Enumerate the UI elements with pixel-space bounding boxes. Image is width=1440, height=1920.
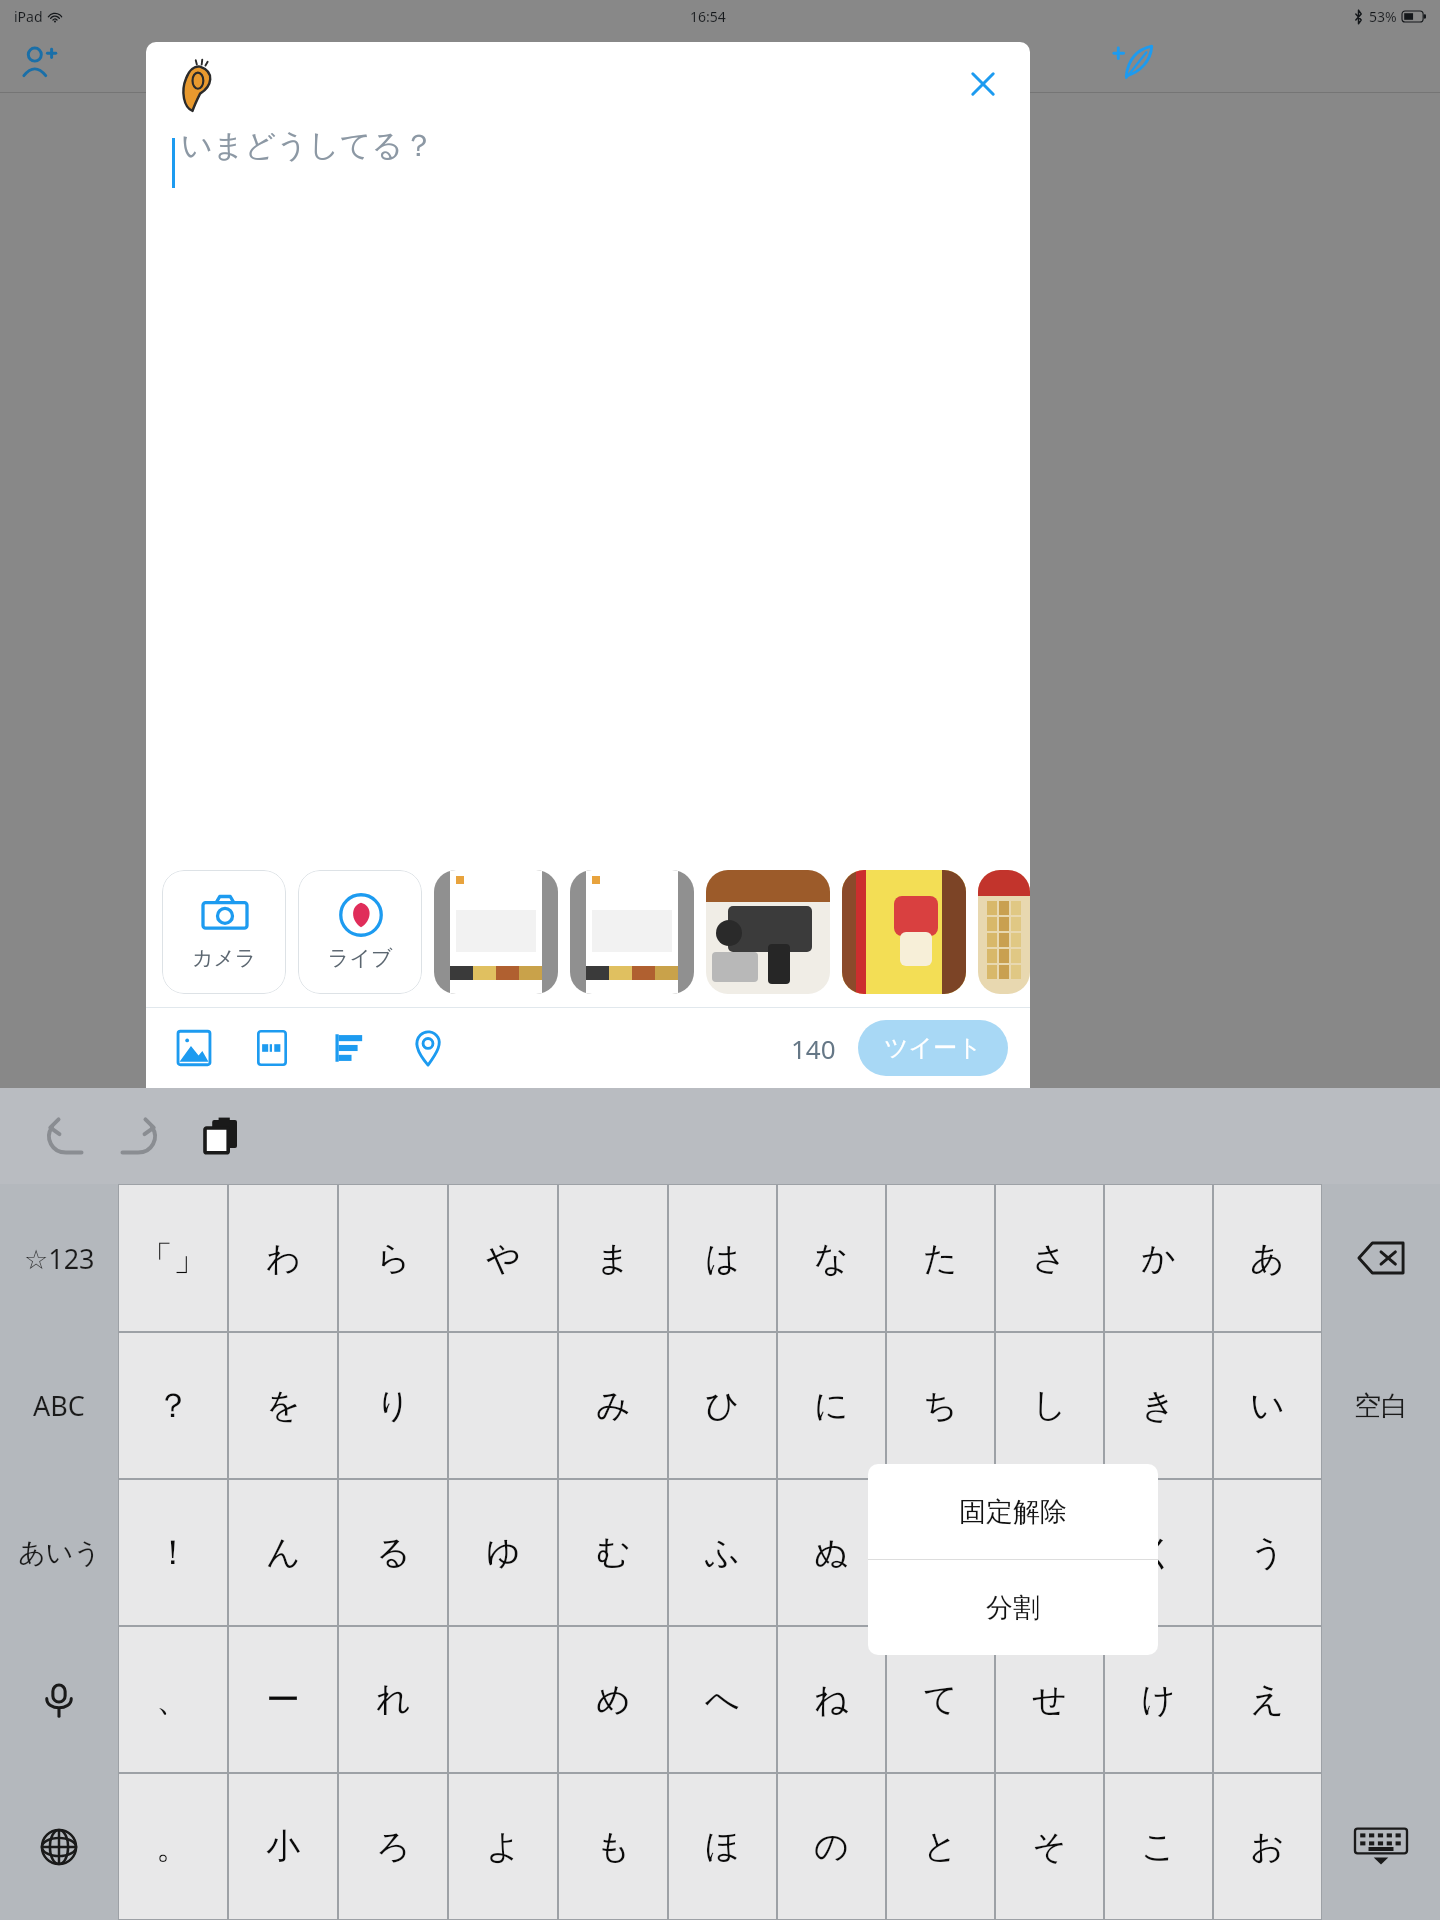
staticText: ！: [156, 1531, 190, 1574]
button[interactable]: あいう: [0, 1479, 118, 1626]
button[interactable]: さ: [995, 1184, 1104, 1332]
staticText: を: [266, 1384, 301, 1427]
button[interactable]: ま: [558, 1184, 668, 1332]
button[interactable]: ね: [777, 1626, 886, 1773]
button[interactable]: [448, 1332, 558, 1479]
button[interactable]: ABC: [0, 1332, 118, 1479]
staticText: に: [814, 1384, 849, 1427]
button[interactable]: Switch keyboard: [0, 1773, 118, 1920]
staticText: ね: [814, 1678, 849, 1721]
button[interactable]: こ: [1104, 1773, 1213, 1920]
button[interactable]: う: [1213, 1479, 1322, 1626]
button[interactable]: 「」: [118, 1184, 228, 1332]
button[interactable]: も: [558, 1773, 668, 1920]
button[interactable]: ふ: [668, 1479, 777, 1626]
button[interactable]: 、: [118, 1626, 228, 1773]
button[interactable]: り: [338, 1332, 448, 1479]
button[interactable]: [706, 870, 830, 994]
staticText: ？: [156, 1384, 190, 1427]
button[interactable]: よ: [448, 1773, 558, 1920]
button[interactable]: な: [777, 1184, 886, 1332]
button[interactable]: い: [1213, 1332, 1322, 1479]
staticText: り: [376, 1384, 411, 1427]
button[interactable]: [570, 870, 694, 994]
button[interactable]: す: [995, 1479, 1104, 1626]
button[interactable]: Add poll: [324, 1022, 376, 1074]
button[interactable]: 固定解除: [868, 1464, 1158, 1559]
staticText: く: [1141, 1531, 1176, 1574]
button[interactable]: お: [1213, 1773, 1322, 1920]
staticText: 。: [156, 1825, 190, 1868]
button[interactable]: ☆123: [0, 1184, 118, 1332]
staticText: れ: [376, 1678, 411, 1721]
button[interactable]: つ: [886, 1479, 995, 1626]
button[interactable]: Undo: [30, 1101, 100, 1171]
staticText: 分割: [986, 1591, 1040, 1625]
button[interactable]: Delete: [1322, 1184, 1440, 1332]
button[interactable]: 空白: [1322, 1332, 1440, 1479]
button[interactable]: ？: [118, 1332, 228, 1479]
staticText: つ: [923, 1531, 958, 1574]
button[interactable]: ひ: [668, 1332, 777, 1479]
button[interactable]: ゆ: [448, 1479, 558, 1626]
button[interactable]: [842, 870, 966, 994]
button[interactable]: そ: [995, 1773, 1104, 1920]
button[interactable]: Add photo: [168, 1022, 220, 1074]
button[interactable]: む: [558, 1479, 668, 1626]
button[interactable]: Paste: [186, 1101, 256, 1171]
button[interactable]: に: [777, 1332, 886, 1479]
button[interactable]: 。: [118, 1773, 228, 1920]
button[interactable]: た: [886, 1184, 995, 1332]
button[interactable]: の: [777, 1773, 886, 1920]
button[interactable]: せ: [995, 1626, 1104, 1773]
button[interactable]: ツイート: [858, 1020, 1008, 1076]
button[interactable]: カメラ: [162, 870, 286, 994]
button[interactable]: れ: [338, 1626, 448, 1773]
button[interactable]: を: [228, 1332, 338, 1479]
button[interactable]: や: [448, 1184, 558, 1332]
button[interactable]: [978, 870, 1030, 994]
button[interactable]: ！: [118, 1479, 228, 1626]
button[interactable]: Add user: [18, 42, 60, 84]
button[interactable]: み: [558, 1332, 668, 1479]
button[interactable]: 分割: [868, 1560, 1158, 1655]
button[interactable]: か: [1104, 1184, 1213, 1332]
button[interactable]: ら: [338, 1184, 448, 1332]
button[interactable]: あ: [1213, 1184, 1322, 1332]
button[interactable]: Redo: [104, 1101, 174, 1171]
button[interactable]: ち: [886, 1332, 995, 1479]
staticText: め: [596, 1678, 631, 1721]
button[interactable]: え: [1213, 1626, 1322, 1773]
button[interactable]: け: [1104, 1626, 1213, 1773]
button[interactable]: へ: [668, 1626, 777, 1773]
button[interactable]: く: [1104, 1479, 1213, 1626]
button[interactable]: ー: [228, 1626, 338, 1773]
button[interactable]: Close: [956, 57, 1010, 111]
staticText: 16:54: [690, 7, 726, 26]
button[interactable]: と: [886, 1773, 995, 1920]
button[interactable]: わ: [228, 1184, 338, 1332]
button[interactable]: ろ: [338, 1773, 448, 1920]
button[interactable]: き: [1104, 1332, 1213, 1479]
button[interactable]: め: [558, 1626, 668, 1773]
button[interactable]: Compose: [1113, 40, 1157, 84]
button[interactable]: は: [668, 1184, 777, 1332]
button[interactable]: ほ: [668, 1773, 777, 1920]
button[interactable]: Hide keyboard: [1322, 1773, 1440, 1920]
button[interactable]: [434, 870, 558, 994]
staticText: ライブ: [328, 945, 393, 971]
button[interactable]: Add location: [402, 1022, 454, 1074]
button[interactable]: し: [995, 1332, 1104, 1479]
button[interactable]: ぬ: [777, 1479, 886, 1626]
button[interactable]: Dictate: [0, 1626, 118, 1773]
button[interactable]: 小: [228, 1773, 338, 1920]
button[interactable]: ライブ: [298, 870, 422, 994]
button[interactable]: Add GIF: [246, 1022, 298, 1074]
staticText: へ: [705, 1678, 740, 1721]
button[interactable]: [448, 1626, 558, 1773]
button[interactable]: て: [886, 1626, 995, 1773]
button[interactable]: る: [338, 1479, 448, 1626]
button[interactable]: ん: [228, 1479, 338, 1626]
